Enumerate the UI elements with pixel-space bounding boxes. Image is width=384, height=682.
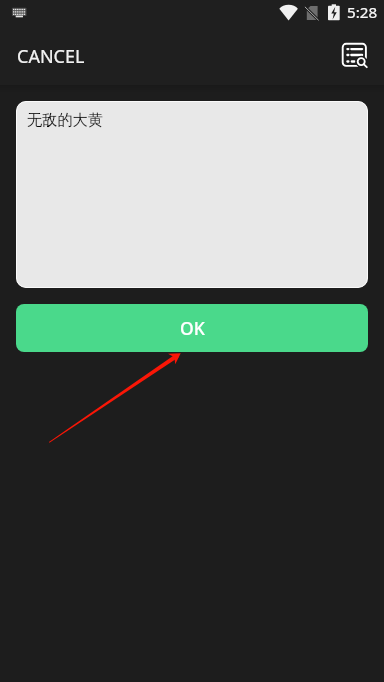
button[interactable]: Search list [330, 32, 378, 80]
staticText: 无敌的大黄 [27, 110, 103, 129]
staticText: CANCEL [17, 44, 85, 69]
button[interactable]: 无敌的大黄 [16, 101, 368, 288]
staticText: OK [180, 316, 205, 340]
button[interactable]: CANCEL [0, 34, 99, 79]
staticText: 5:28 [347, 2, 378, 23]
button[interactable]: OK [16, 304, 368, 352]
